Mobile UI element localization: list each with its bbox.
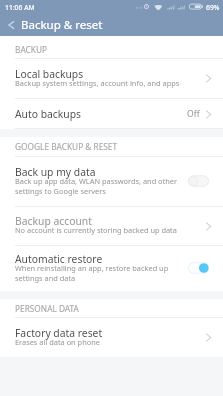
staticText: BACKUP — [15, 44, 47, 55]
staticText: Backup & reset — [21, 17, 103, 33]
staticText: PERSONAL DATA — [15, 303, 79, 314]
button[interactable]: Navigate up — [0, 14, 21, 36]
button[interactable]: Factory data reset — [0, 318, 223, 357]
staticText: Off — [187, 108, 200, 120]
staticText: Automatic restore — [15, 252, 103, 266]
staticText: Back up app data, WLAN passwords, and ot… — [15, 176, 182, 196]
staticText: Factory data reset — [15, 326, 103, 340]
staticText: Backup account — [15, 214, 92, 228]
button[interactable]: Back up my data — [0, 157, 223, 206]
button[interactable]: Backup account — [0, 207, 223, 245]
button[interactable]: Switch off — [188, 175, 209, 187]
staticText: GOOGLE BACKUP & RESET — [15, 141, 118, 152]
staticText: Local backups — [15, 67, 84, 81]
staticText: Erases all data on phone — [15, 337, 100, 347]
staticText: No account is currently storing backed u… — [15, 225, 177, 235]
staticText: 69% — [206, 3, 220, 12]
button[interactable]: Switch on — [188, 262, 209, 274]
staticText: When reinstalling an app, restore backed… — [15, 263, 182, 283]
staticText: Backup system settings, account info, an… — [15, 78, 180, 88]
button[interactable]: Automatic restore — [0, 246, 223, 291]
staticText: Auto backups — [15, 107, 187, 121]
staticText: Back up my data — [15, 165, 96, 179]
staticText: 11:06 AM — [5, 3, 35, 12]
button[interactable]: Auto backups — [0, 99, 223, 128]
button[interactable]: Local backups — [0, 59, 223, 98]
